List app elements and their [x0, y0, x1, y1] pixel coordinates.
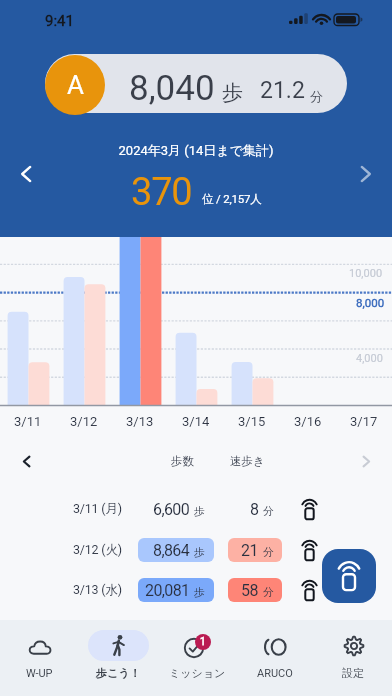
- button[interactable]: 3/11 (月): [0, 489, 392, 529]
- staticText: 1: [200, 636, 206, 648]
- button[interactable]: 歩こう！: [79, 620, 158, 696]
- button[interactable]: 次の月: [346, 154, 386, 194]
- button[interactable]: 連携: [297, 497, 321, 521]
- staticText: ミッション: [169, 666, 226, 680]
- staticText: 8,000: [356, 296, 385, 309]
- staticText: 3/17: [350, 414, 378, 429]
- staticText: 8: [250, 500, 259, 519]
- staticText: 3/12 (火): [73, 542, 122, 558]
- button[interactable]: デバイス連携: [322, 549, 376, 603]
- button[interactable]: A: [45, 55, 105, 115]
- button[interactable]: 連携: [297, 578, 321, 602]
- button[interactable]: 前の週: [6, 445, 46, 477]
- staticText: 6,600: [153, 500, 190, 519]
- staticText: 20,081: [145, 581, 190, 600]
- button[interactable]: 1: [158, 620, 236, 696]
- staticText: 8,864: [153, 541, 190, 560]
- button[interactable]: 連携: [297, 538, 321, 562]
- staticText: 歩: [222, 80, 243, 106]
- button[interactable]: 前の月: [6, 154, 46, 194]
- button[interactable]: 8,040: [45, 54, 347, 113]
- button[interactable]: 設定: [314, 620, 392, 696]
- staticText: W-UP: [26, 667, 53, 680]
- staticText: 速歩き: [230, 454, 265, 468]
- staticText: 分: [263, 504, 274, 518]
- staticText: 分: [263, 585, 274, 599]
- staticText: 3/11 (月): [73, 501, 122, 517]
- staticText: 3/12: [70, 414, 98, 429]
- staticText: 3/14: [182, 414, 210, 429]
- staticText: 21.2: [260, 77, 305, 104]
- staticText: ARUCO: [257, 667, 293, 680]
- staticText: 3/16: [294, 414, 322, 429]
- staticText: 9:41: [45, 12, 74, 30]
- staticText: 21: [241, 541, 259, 560]
- staticText: 3/13: [126, 414, 154, 429]
- button[interactable]: W-UP: [0, 620, 79, 696]
- staticText: 4,000: [356, 352, 383, 365]
- button[interactable]: 3/12 (火): [0, 530, 392, 570]
- staticText: 分: [263, 545, 274, 559]
- staticText: 3/15: [238, 414, 266, 429]
- staticText: 3/11: [14, 414, 42, 429]
- staticText: 位 / 2,157人: [202, 192, 262, 206]
- staticText: 3/13 (水): [73, 582, 122, 598]
- button[interactable]: ARUCO: [236, 620, 314, 696]
- staticText: 370: [131, 170, 192, 215]
- button[interactable]: 次の週: [346, 445, 386, 477]
- button[interactable]: 3/13 (水): [0, 570, 392, 610]
- staticText: 10,000: [349, 267, 383, 280]
- staticText: 歩: [194, 504, 205, 518]
- staticText: 設定: [342, 666, 364, 680]
- staticText: 58: [241, 581, 259, 600]
- staticText: 分: [310, 88, 323, 104]
- staticText: 8,040: [129, 68, 215, 109]
- staticText: 歩: [194, 585, 205, 599]
- staticText: A: [67, 70, 84, 100]
- staticText: 歩数: [171, 454, 194, 468]
- staticText: 2024年3月 (14日まで集計): [0, 142, 392, 158]
- staticText: 歩: [194, 545, 205, 559]
- staticText: 歩こう！: [96, 666, 141, 680]
